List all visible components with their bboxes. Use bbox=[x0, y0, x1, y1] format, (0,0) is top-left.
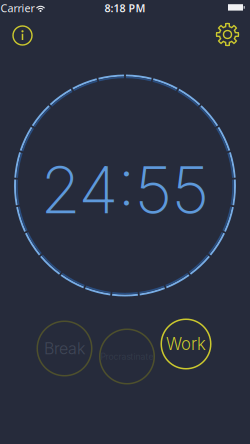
staticText: 24:55 bbox=[41, 150, 209, 229]
button[interactable]: About bbox=[7, 20, 37, 50]
button[interactable]: Settings bbox=[212, 19, 242, 49]
staticText: Procrastinate bbox=[100, 351, 153, 362]
button[interactable]: Work bbox=[160, 318, 211, 369]
button[interactable]: Procrastinate bbox=[99, 328, 155, 384]
staticText: Break bbox=[44, 339, 85, 358]
staticText: 8:18 PM bbox=[104, 1, 145, 15]
button[interactable]: Break bbox=[36, 320, 92, 376]
staticText: Carrier bbox=[0, 1, 34, 15]
staticText: Work bbox=[166, 334, 206, 354]
